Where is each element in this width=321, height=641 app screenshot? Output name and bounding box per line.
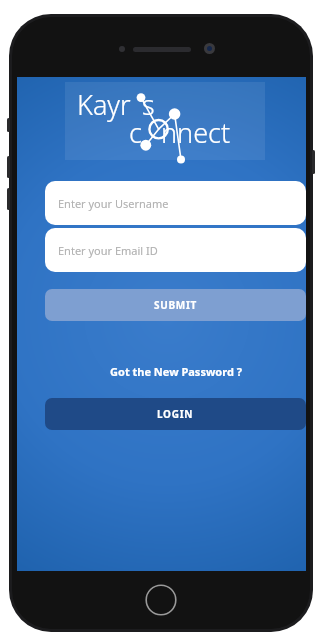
staticText: nnect	[161, 114, 231, 151]
staticText: Enter your Email ID	[58, 243, 158, 258]
button[interactable]: LOGIN	[45, 398, 306, 430]
button[interactable]: Enter your Username	[45, 181, 306, 225]
staticText: c	[129, 114, 142, 151]
staticText: s	[142, 86, 155, 123]
button[interactable]: Enter your Email ID	[45, 228, 306, 272]
staticText: Got the New Password ?	[110, 364, 242, 379]
staticText: LOGIN	[157, 407, 194, 421]
staticText: Kayr	[77, 86, 131, 123]
button[interactable]: Got the New Password ?	[45, 360, 306, 382]
staticText: Enter your Username	[58, 196, 169, 211]
button[interactable]: SUBMIT	[45, 289, 306, 321]
staticText: SUBMIT	[154, 298, 198, 312]
